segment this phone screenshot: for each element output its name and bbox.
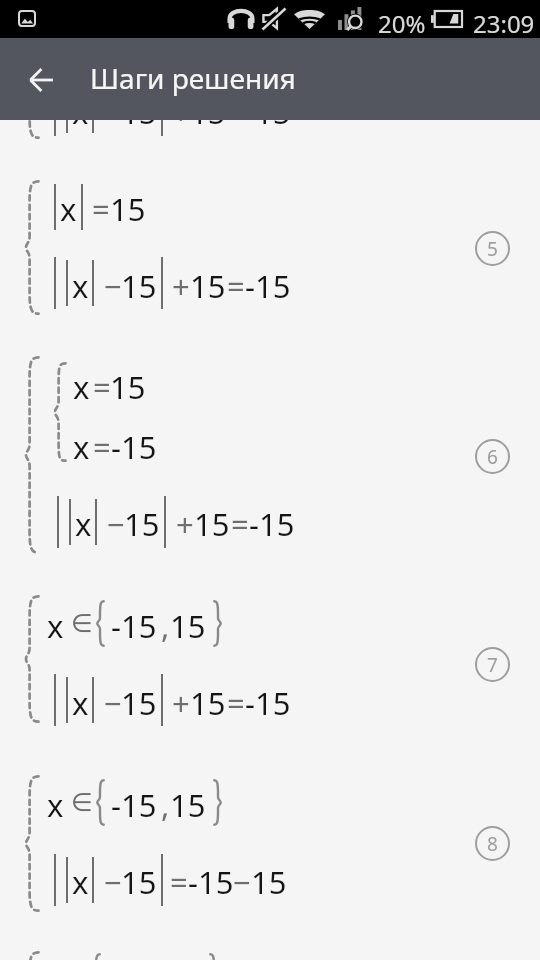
staticText: 20% <box>378 7 426 40</box>
staticText: = <box>227 265 245 307</box>
staticText: -15 <box>111 426 157 468</box>
staticText: -15 <box>111 605 157 647</box>
staticText: 15 <box>251 861 287 903</box>
staticText: 15 <box>194 503 230 545</box>
staticText: 15 <box>190 682 226 724</box>
staticText: 15 <box>121 861 157 903</box>
staticText: x <box>73 426 90 468</box>
staticText: x <box>72 861 89 903</box>
button[interactable]: 6 <box>475 439 510 474</box>
button[interactable]: Back <box>13 52 69 108</box>
staticText: 15 <box>190 265 226 307</box>
staticText: x <box>47 784 64 826</box>
staticText: 7 <box>487 652 498 678</box>
staticText: , <box>161 784 170 826</box>
staticText: − <box>104 91 122 133</box>
staticText: + <box>172 91 190 133</box>
button[interactable]: 5 <box>475 231 510 266</box>
staticText: 15 <box>110 188 146 230</box>
staticText: 15 <box>110 366 146 408</box>
staticText: Шаги решения <box>90 59 296 97</box>
staticText: -15 <box>245 265 291 307</box>
staticText: = <box>227 91 245 133</box>
staticText: x <box>47 605 64 647</box>
staticText: -15 <box>245 682 291 724</box>
staticText: x <box>72 682 89 724</box>
staticText: 15 <box>190 91 226 133</box>
staticText: = <box>93 366 111 408</box>
staticText: = <box>227 682 245 724</box>
staticText: -15 <box>111 784 157 826</box>
staticText: 6 <box>487 444 498 470</box>
staticText: -15 <box>245 91 291 133</box>
staticText: 15 <box>121 682 157 724</box>
staticText: − <box>104 265 122 307</box>
button[interactable]: 8 <box>475 826 510 861</box>
staticText: − <box>104 861 122 903</box>
staticText: 8 <box>487 831 498 857</box>
staticText: + <box>176 503 194 545</box>
staticText: 15 <box>121 91 157 133</box>
staticText: ∈ <box>71 788 93 817</box>
staticText: − <box>107 503 125 545</box>
staticText: − <box>233 861 251 903</box>
staticText: 15 <box>170 784 206 826</box>
staticText: 5 <box>487 236 498 262</box>
staticText: -15 <box>249 503 295 545</box>
staticText: + <box>172 682 190 724</box>
staticText: 15 <box>121 265 157 307</box>
staticText: x <box>73 366 90 408</box>
staticText: ∈ <box>71 609 93 638</box>
staticText: x <box>72 265 89 307</box>
staticText: 15 <box>170 605 206 647</box>
staticText: − <box>104 682 122 724</box>
staticText: -15 <box>188 861 234 903</box>
staticText: x <box>72 91 89 133</box>
staticText: = <box>93 426 111 468</box>
staticText: x <box>60 188 77 230</box>
staticText: = <box>170 861 188 903</box>
staticText: , <box>161 605 170 647</box>
staticText: = <box>92 188 110 230</box>
staticText: x <box>75 503 92 545</box>
staticText: 23:09 <box>473 7 535 40</box>
button[interactable]: 7 <box>475 647 510 682</box>
staticText: + <box>172 265 190 307</box>
staticText: 15 <box>124 503 160 545</box>
staticText: = <box>231 503 249 545</box>
